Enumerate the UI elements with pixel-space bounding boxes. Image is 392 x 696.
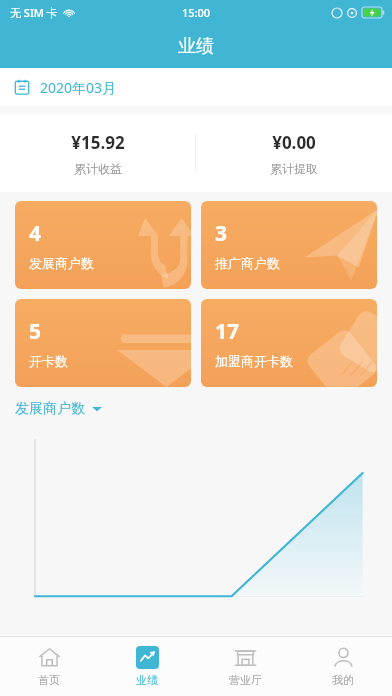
- staticText: 加盟商开卡数: [215, 353, 293, 369]
- button[interactable]: 发展商户数: [15, 400, 102, 418]
- button[interactable]: 3: [201, 201, 377, 289]
- button[interactable]: 业绩: [98, 637, 196, 696]
- staticText: 业绩: [136, 673, 158, 687]
- staticText: 3: [215, 219, 228, 248]
- staticText: 累计收益: [74, 161, 122, 176]
- staticText: 发展商户数: [29, 255, 94, 271]
- staticText: 开卡数: [29, 353, 68, 369]
- staticText: 我的: [332, 673, 354, 687]
- button[interactable]: 17: [201, 299, 377, 387]
- button[interactable]: 我的: [294, 637, 392, 696]
- button[interactable]: ¥0.00: [196, 131, 392, 176]
- staticText: 2020年03月: [40, 78, 117, 97]
- staticText: 发展商户数: [15, 400, 85, 418]
- staticText: 15:00: [182, 5, 211, 20]
- button[interactable]: 4: [15, 201, 191, 289]
- staticText: ¥15.92: [71, 131, 125, 154]
- staticText: 业绩: [178, 35, 214, 58]
- staticText: 5: [29, 317, 42, 346]
- staticText: 4: [29, 219, 42, 248]
- button[interactable]: 2020年03月: [0, 68, 392, 106]
- staticText: 无 SIM 卡: [10, 5, 58, 20]
- staticText: ¥0.00: [272, 131, 316, 154]
- staticText: 累计提取: [270, 161, 318, 176]
- button[interactable]: 5: [15, 299, 191, 387]
- staticText: 营业厅: [229, 673, 262, 687]
- staticText: 推广商户数: [215, 255, 280, 271]
- button[interactable]: ¥15.92: [0, 131, 195, 176]
- button[interactable]: 首页: [0, 637, 98, 696]
- button[interactable]: 营业厅: [196, 637, 294, 696]
- staticText: 17: [215, 317, 240, 346]
- staticText: 首页: [38, 673, 60, 687]
